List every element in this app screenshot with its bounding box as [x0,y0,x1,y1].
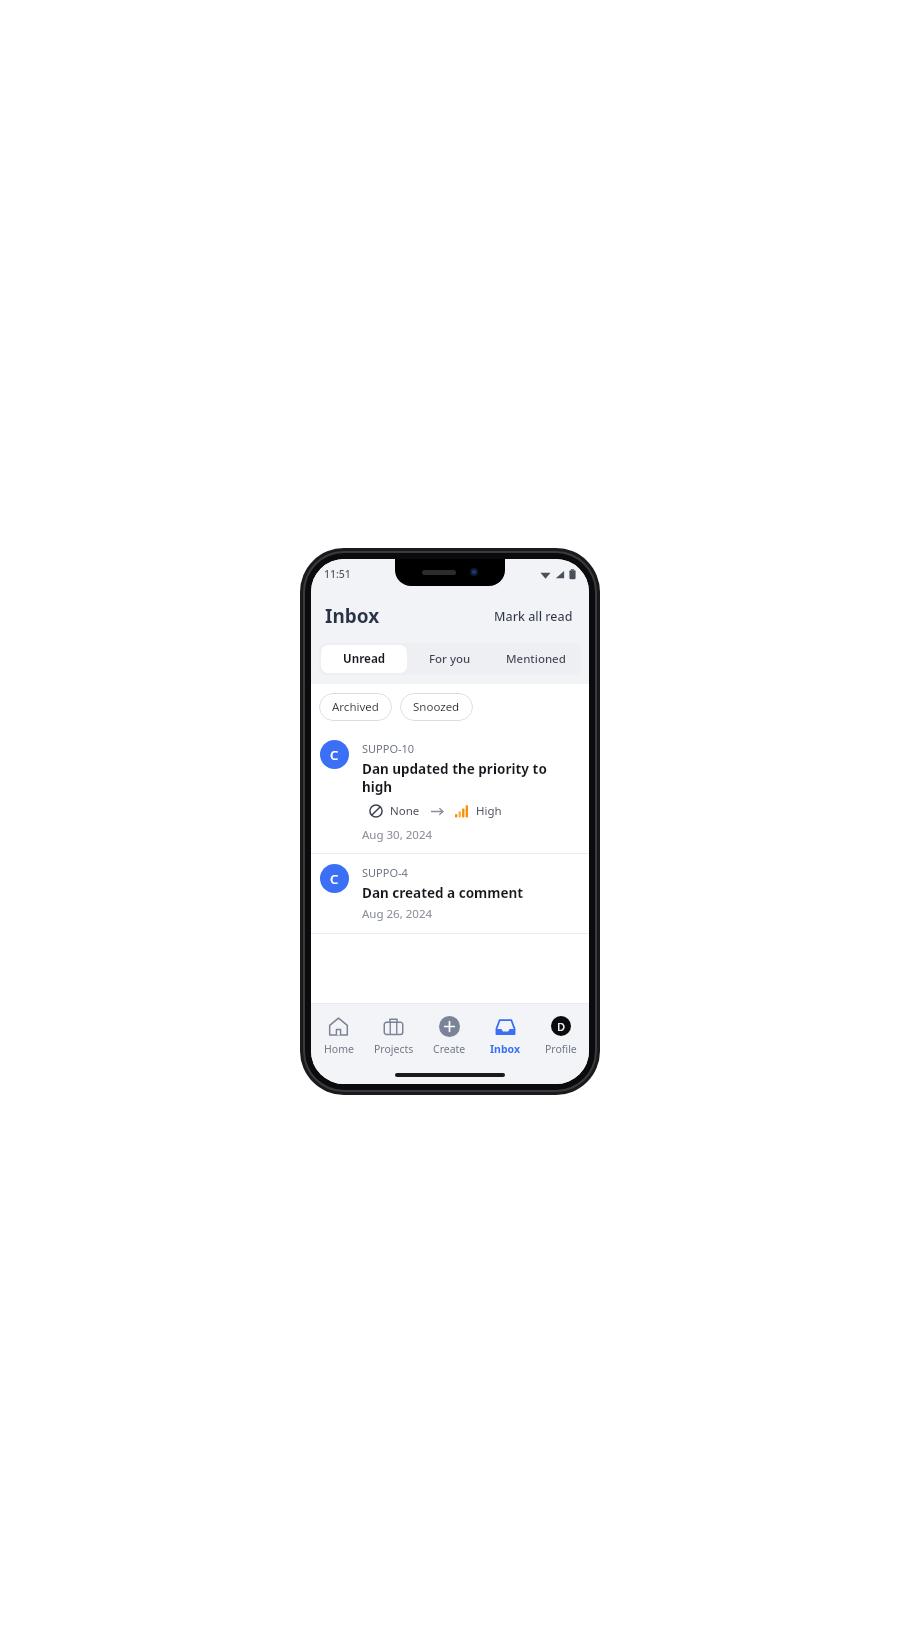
staticText: Mentioned [506,651,566,667]
button[interactable]: For you [407,645,493,673]
button[interactable]: Create [421,1004,477,1066]
staticText: Profile [545,1042,577,1056]
staticText: 11:51 [324,567,351,581]
staticText: SUPPO-4 [362,865,408,880]
staticText: Snoozed [413,699,460,715]
other: Create [439,1016,460,1037]
staticText: Create [433,1042,466,1056]
staticText: Home [324,1042,354,1056]
staticText: Aug 30, 2024 [362,827,433,843]
staticText: None [390,803,420,819]
other: Inbox [495,1016,516,1037]
staticText: Unread [343,651,386,667]
staticText: D [557,1019,566,1034]
staticText: C [330,746,339,764]
staticText: Inbox [325,603,380,629]
button[interactable]: Home [311,1004,366,1066]
staticText: Dan created a comment [362,884,524,902]
button[interactable]: C [311,731,589,853]
staticText: Mark all read [494,608,573,625]
other: Home [328,1016,349,1037]
staticText: Dan updated the priority to high [362,760,577,796]
button[interactable]: Mentioned [493,645,579,673]
staticText: C [330,870,339,888]
button[interactable]: Projects [366,1004,421,1066]
button[interactable]: Archived [319,693,392,721]
button[interactable]: Inbox [477,1004,533,1066]
button[interactable]: Snoozed [400,693,473,721]
staticText: High [476,803,502,819]
staticText: Projects [374,1042,414,1056]
button[interactable]: C [311,854,589,933]
other: Projects [383,1016,404,1037]
staticText: SUPPO-10 [362,741,415,756]
button[interactable]: Unread [321,645,407,673]
staticText: For you [429,651,471,667]
staticText: Aug 26, 2024 [362,906,433,922]
button[interactable]: Profile [533,1004,589,1066]
staticText: Archived [332,699,379,715]
other: Profile [551,1016,571,1036]
button[interactable]: Mark all read [492,605,575,628]
staticText: Inbox [490,1042,520,1056]
